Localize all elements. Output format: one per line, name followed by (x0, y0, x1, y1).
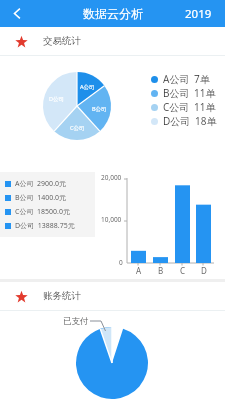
staticText: D公司 (49, 95, 65, 103)
staticText: 7单 (194, 72, 210, 86)
button[interactable]: 2019 (185, 6, 212, 22)
staticText: 数据云分析 (83, 6, 143, 21)
staticText: D公司 (163, 114, 191, 128)
staticText: A (136, 265, 142, 276)
button[interactable]: 账务统计 (0, 282, 225, 310)
staticText: 交易统计 (43, 35, 81, 47)
staticText: A公司 (80, 83, 95, 91)
staticText: D公司 13888.75元 (15, 221, 75, 231)
staticText: 10,000 (101, 215, 122, 224)
button[interactable]: Back (0, 0, 34, 27)
staticText: 20,000 (101, 173, 122, 182)
staticText: B公司 1400.0元 (15, 193, 67, 203)
staticText: C公司 18500.0元 (15, 207, 70, 217)
staticText: B公司 (163, 86, 190, 100)
staticText: 11单 (194, 86, 216, 100)
staticText: C (180, 265, 186, 276)
staticText: 11单 (194, 100, 216, 114)
staticText: D (201, 265, 207, 276)
staticText: A公司 2900.0元 (15, 179, 67, 189)
staticText: 18单 (195, 114, 217, 128)
staticText: 0 (119, 258, 123, 267)
staticText: 账务统计 (43, 290, 81, 302)
button[interactable]: 交易统计 (0, 27, 225, 55)
staticText: 2019 (185, 6, 212, 22)
staticText: B公司 (92, 105, 107, 113)
staticText: C公司 (163, 100, 190, 114)
staticText: 已支付 (63, 316, 89, 327)
staticText: C公司 (70, 124, 85, 132)
staticText: B (158, 265, 164, 276)
staticText: A公司 (163, 72, 190, 86)
